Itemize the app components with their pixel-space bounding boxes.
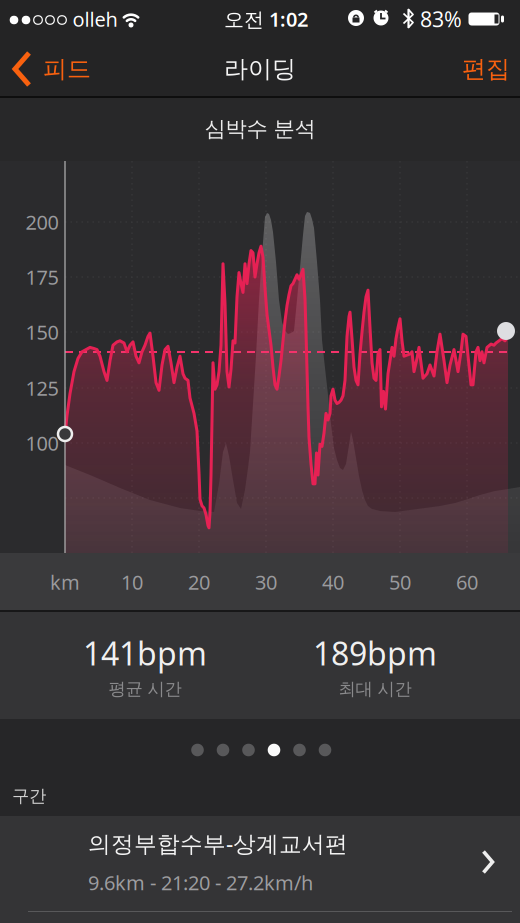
staticText: 189bpm bbox=[313, 632, 437, 674]
staticText: 의정부합수부-상계교서편 bbox=[88, 828, 348, 858]
staticText: 최대 시간 bbox=[338, 678, 411, 700]
staticText: 141bpm bbox=[83, 632, 207, 674]
staticText: olleh bbox=[72, 6, 117, 32]
staticText: 150 bbox=[25, 319, 58, 345]
staticText: 175 bbox=[25, 264, 58, 290]
staticText: 심박수 분석 bbox=[204, 116, 315, 142]
staticText: 오전 1:02 bbox=[224, 6, 308, 32]
staticText: 20 bbox=[188, 569, 210, 595]
staticText: 라이딩 bbox=[224, 54, 296, 84]
button[interactable]: 피드 bbox=[15, 41, 91, 97]
staticText: 10 bbox=[121, 569, 143, 595]
staticText: 125 bbox=[25, 375, 58, 401]
staticText: 60 bbox=[456, 569, 478, 595]
staticText: 40 bbox=[322, 569, 344, 595]
staticText: 50 bbox=[389, 569, 411, 595]
button[interactable]: 의정부합수부-상계교서편 bbox=[0, 816, 520, 908]
staticText: 구간 bbox=[12, 785, 46, 807]
staticText: 100 bbox=[25, 430, 58, 456]
button[interactable]: 편집 bbox=[462, 41, 510, 97]
staticText: km bbox=[50, 569, 80, 595]
staticText: 평균 시간 bbox=[108, 678, 181, 700]
staticText: 83% bbox=[420, 5, 462, 33]
staticText: 피드 bbox=[43, 54, 91, 84]
staticText: 200 bbox=[25, 209, 58, 235]
button[interactable]: 페이지 bbox=[0, 0, 520, 923]
staticText: 30 bbox=[255, 569, 277, 595]
staticText: 9.6km - 21:20 - 27.2km/h bbox=[88, 869, 313, 896]
staticText: 편집 bbox=[462, 54, 510, 84]
